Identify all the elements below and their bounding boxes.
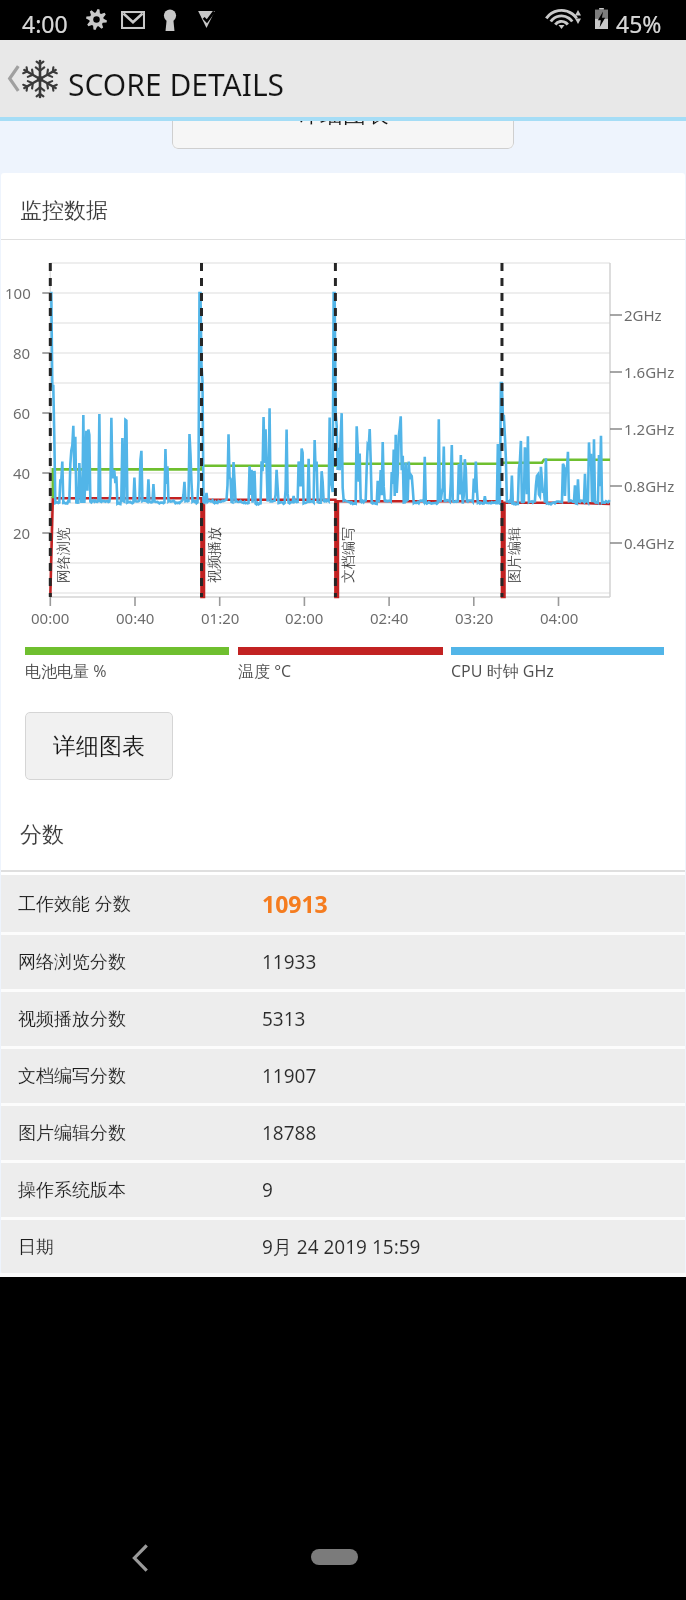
staticText: 0.4GHz	[624, 533, 675, 553]
staticText: 10913	[262, 888, 328, 919]
staticText: 100	[5, 283, 31, 303]
button[interactable]: 网络浏览分数	[1, 935, 685, 989]
staticText: 45%	[616, 8, 662, 39]
button[interactable]: 图片编辑分数	[1, 1106, 685, 1160]
staticText: 分数	[20, 821, 64, 849]
staticText: 网络浏览	[55, 527, 73, 583]
button[interactable]: 日期	[1, 1220, 685, 1273]
staticText: 01:20	[201, 608, 240, 628]
button[interactable]: Back to score details	[0, 40, 686, 117]
staticText: 03:20	[455, 608, 494, 628]
staticText: 电池电量 %	[25, 660, 107, 682]
staticText: 日期	[18, 1236, 54, 1259]
staticText: 图片编辑	[506, 527, 524, 583]
staticText: 2GHz	[624, 305, 662, 325]
button[interactable]: 视频播放分数	[1, 992, 685, 1046]
staticText: 9月 24 2019 15:59	[262, 1234, 421, 1260]
staticText: 详细图表	[53, 732, 145, 761]
staticText: 1.6GHz	[624, 362, 675, 382]
staticText: 02:40	[370, 608, 409, 628]
button[interactable]: Back	[110, 1528, 170, 1588]
staticText: 网络浏览分数	[18, 951, 126, 974]
staticText: CPU 时钟 GHz	[451, 660, 554, 682]
staticText: 操作系统版本	[18, 1179, 126, 1202]
staticText: 9	[262, 1177, 273, 1203]
staticText: 工作效能 分数	[18, 891, 131, 916]
staticText: 80	[13, 343, 31, 363]
staticText: 04:00	[540, 608, 579, 628]
staticText: 视频播放	[206, 527, 224, 583]
staticText: 60	[13, 403, 31, 423]
staticText: 1.2GHz	[624, 419, 675, 439]
staticText: 20	[13, 523, 31, 543]
button[interactable]: 详细图表	[25, 712, 173, 780]
staticText: 0.8GHz	[624, 476, 675, 496]
staticText: 00:00	[31, 608, 70, 628]
staticText: 图片编辑分数	[18, 1122, 126, 1145]
button[interactable]: 详细图表	[172, 121, 514, 149]
staticText: 18788	[262, 1120, 317, 1146]
staticText: 5313	[262, 1006, 306, 1032]
staticText: SCORE DETAILS	[68, 64, 285, 105]
staticText: 详细图表	[297, 121, 389, 129]
staticText: 视频播放分数	[18, 1008, 126, 1031]
staticText: 11907	[262, 1063, 317, 1089]
staticText: 文档编写分数	[18, 1065, 126, 1088]
staticText: 监控数据	[20, 197, 108, 225]
staticText: 文档编写	[340, 527, 358, 583]
button[interactable]: Home	[311, 1549, 358, 1565]
button[interactable]: 工作效能 分数	[1, 875, 685, 932]
button[interactable]: 操作系统版本	[1, 1163, 685, 1217]
staticText: 4:00	[22, 8, 68, 39]
staticText: 02:00	[285, 608, 324, 628]
staticText: 00:40	[116, 608, 155, 628]
staticText: 11933	[262, 949, 317, 975]
staticText: 温度 °C	[238, 660, 292, 682]
button[interactable]: 文档编写分数	[1, 1049, 685, 1103]
staticText: 40	[13, 463, 31, 483]
